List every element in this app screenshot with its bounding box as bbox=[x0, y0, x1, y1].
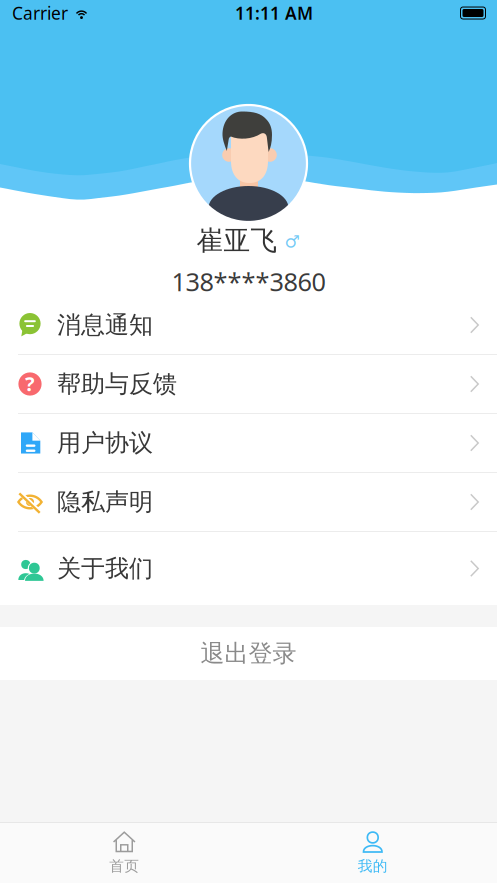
staticText: 帮助与反馈 bbox=[57, 369, 177, 399]
button[interactable]: ? bbox=[0, 355, 497, 414]
button[interactable]: 用户协议 bbox=[0, 414, 497, 473]
button[interactable]: 首页 bbox=[0, 823, 248, 883]
staticText: ? bbox=[25, 370, 35, 397]
staticText: 崔亚飞 bbox=[196, 224, 277, 257]
staticText: ♂ bbox=[284, 232, 300, 251]
staticText: 11:11 AM bbox=[235, 1, 313, 24]
button[interactable]: 隐私声明 bbox=[0, 473, 497, 532]
staticText: 我的 bbox=[358, 857, 388, 875]
staticText: 关于我们 bbox=[57, 554, 153, 583]
staticText: 138****3860 bbox=[171, 265, 325, 298]
button[interactable]: 关于我们 bbox=[0, 532, 497, 605]
staticText: 首页 bbox=[109, 857, 139, 875]
button[interactable]: 退出登录 bbox=[0, 627, 497, 680]
staticText: Carrier bbox=[12, 1, 68, 24]
staticText: 用户协议 bbox=[57, 428, 153, 458]
staticText: 隐私声明 bbox=[57, 487, 153, 517]
staticText: 退出登录 bbox=[200, 639, 296, 668]
button[interactable]: 我的 bbox=[248, 823, 497, 883]
button[interactable]: 消息通知 bbox=[0, 296, 497, 355]
staticText: 消息通知 bbox=[57, 310, 153, 340]
